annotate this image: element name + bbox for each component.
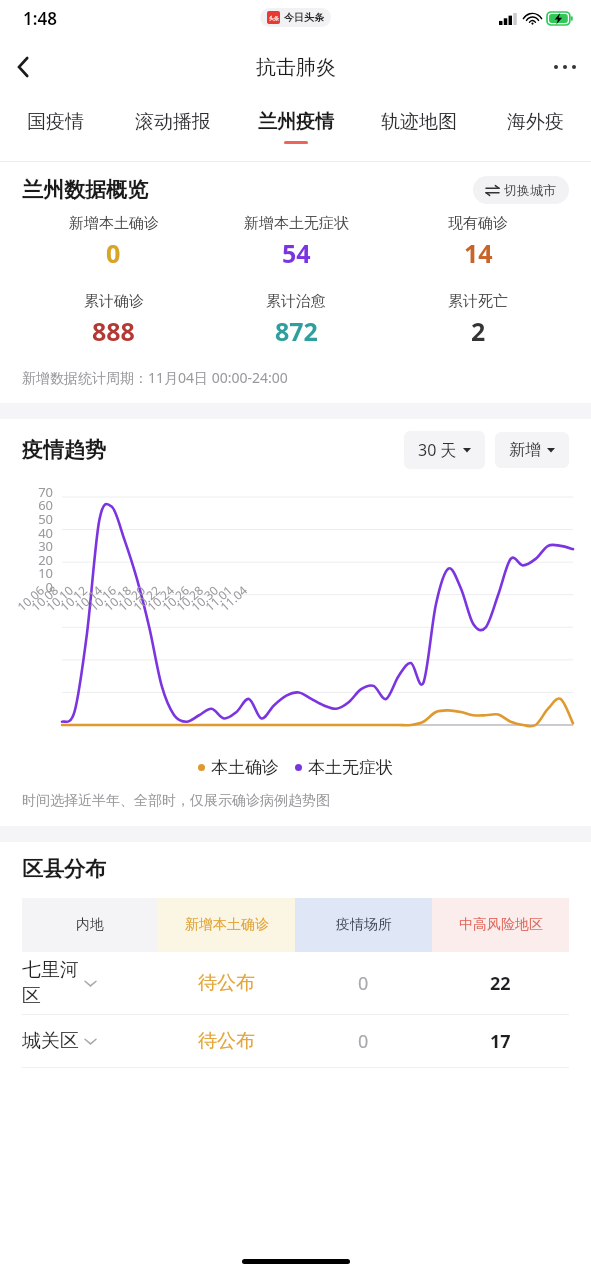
staticText: 新增本土确诊 — [69, 214, 159, 233]
button[interactable]: 新增本土确诊 — [22, 214, 205, 270]
staticText: 11.01 — [202, 582, 235, 614]
button[interactable]: 新增 — [495, 432, 569, 468]
staticText: 新增数据统计周期：11月04日 00:00-24:00 — [22, 368, 288, 387]
staticText: 10.16 — [86, 582, 119, 614]
staticText: 1:48 — [23, 7, 57, 30]
button[interactable]: 城关区 — [22, 1015, 569, 1067]
staticText: 10.14 — [72, 582, 105, 614]
staticText: 疫情场所 — [336, 916, 392, 934]
staticText: 城关区 — [22, 1029, 79, 1053]
button[interactable]: 海外疫 — [480, 110, 591, 134]
staticText: 10.06 — [14, 582, 47, 614]
button[interactable]: 滚动播报 — [111, 110, 234, 134]
staticText: 抗击肺炎 — [256, 55, 336, 80]
staticText: 10.28 — [173, 582, 206, 614]
button[interactable]: 国疫情 — [0, 110, 111, 134]
button[interactable]: 30 天 — [404, 431, 485, 469]
staticText: 50 — [0, 510, 53, 528]
button[interactable]: 轨迹地图 — [357, 110, 480, 134]
staticText: 待公布 — [198, 1029, 255, 1053]
staticText: 头条 — [269, 15, 279, 21]
button[interactable]: More options — [539, 41, 591, 93]
button[interactable]: 兰州疫情 — [234, 110, 357, 144]
button[interactable]: Back — [0, 43, 48, 91]
staticText: 60 — [0, 496, 53, 514]
staticText: 10.12 — [57, 582, 90, 614]
staticText: 今日头条 — [284, 11, 324, 24]
staticText: 时间选择近半年、全部时，仅展示确诊病例趋势图 — [22, 792, 330, 810]
staticText: 30 — [0, 537, 53, 555]
button[interactable]: 中高风险地区 — [432, 898, 569, 952]
staticText: 累计死亡 — [448, 292, 508, 311]
button[interactable]: 累计治愈 — [205, 292, 387, 348]
button[interactable]: 新增本土无症状 — [205, 214, 387, 270]
button[interactable]: 现有确诊 — [387, 214, 569, 270]
button[interactable]: 累计死亡 — [387, 292, 569, 348]
staticText: 区县分布 — [22, 856, 106, 882]
staticText: 10.18 — [101, 582, 134, 614]
staticText: 滚动播报 — [135, 110, 211, 134]
staticText: 11.04 — [217, 582, 250, 614]
staticText: 现有确诊 — [448, 214, 508, 233]
staticText: 2 — [471, 314, 486, 348]
staticText: 0 — [106, 236, 121, 270]
staticText: 54 — [282, 236, 311, 270]
staticText: 10.22 — [130, 582, 163, 614]
button[interactable]: 七里河 区 — [22, 952, 569, 1014]
staticText: 本土确诊 — [211, 757, 279, 778]
staticText: 10.24 — [144, 582, 177, 614]
staticText: 22 — [490, 971, 511, 996]
staticText: 30 天 — [418, 439, 457, 461]
staticText: 切换城市 — [504, 182, 556, 198]
button[interactable]: 切换城市 — [473, 176, 569, 204]
staticText: 中高风险地区 — [459, 916, 543, 934]
staticText: 40 — [0, 524, 53, 542]
staticText: 新增本土无症状 — [244, 214, 349, 233]
staticText: 0 — [358, 1029, 369, 1054]
staticText: 轨迹地图 — [381, 110, 457, 134]
staticText: 0 — [358, 971, 369, 996]
staticText: 14 — [464, 236, 493, 270]
staticText: 累计治愈 — [266, 292, 326, 311]
staticText: 新增本土确诊 — [185, 916, 269, 934]
staticText: 待公布 — [198, 971, 255, 995]
button[interactable]: 累计确诊 — [22, 292, 205, 348]
staticText: 10.10 — [43, 582, 76, 614]
button[interactable]: 疫情场所 — [295, 898, 432, 952]
button[interactable]: 内地 — [22, 898, 158, 952]
staticText: 国疫情 — [27, 110, 84, 134]
staticText: 内地 — [76, 916, 104, 934]
staticText: 新增 — [509, 440, 541, 460]
staticText: 20 — [0, 551, 53, 569]
staticText: 10 — [0, 564, 53, 582]
staticText: 本土无症状 — [308, 757, 393, 778]
staticText: 0 — [0, 578, 53, 596]
staticText: 888 — [92, 314, 135, 348]
staticText: 10.30 — [188, 582, 221, 614]
staticText: 872 — [275, 314, 318, 348]
button[interactable]: 新增本土确诊 — [158, 898, 295, 952]
staticText: 10.08 — [28, 582, 61, 614]
staticText: 兰州疫情 — [258, 110, 334, 134]
staticText: 七里河 区 — [22, 958, 79, 1008]
staticText: 累计确诊 — [84, 292, 144, 311]
staticText: 兰州数据概览 — [22, 177, 148, 203]
staticText: 10.20 — [115, 582, 148, 614]
staticText: 海外疫 — [507, 110, 564, 134]
staticText: 疫情趋势 — [22, 437, 106, 463]
staticText: 70 — [0, 483, 53, 501]
staticText: 10.26 — [159, 582, 192, 614]
staticText: 17 — [490, 1029, 511, 1054]
